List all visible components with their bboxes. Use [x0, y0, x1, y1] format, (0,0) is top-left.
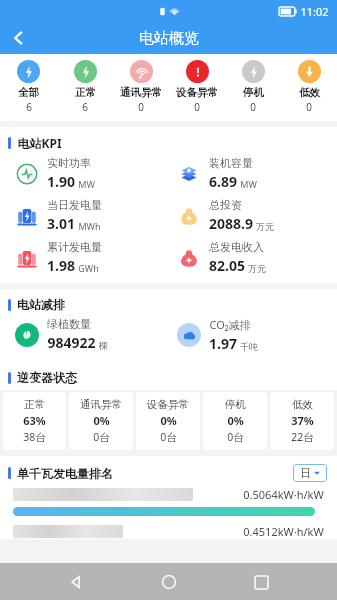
staticText: 0% — [93, 413, 110, 428]
staticText: 通讯异常 — [80, 398, 122, 411]
button[interactable]: 通讯异常 — [113, 60, 169, 114]
staticText: 总投资 — [209, 198, 242, 212]
staticText: 82.05 — [209, 256, 245, 275]
staticText: 2088.9 — [209, 214, 253, 233]
button[interactable]: Home — [152, 565, 186, 599]
staticText: 1.97 — [209, 334, 237, 353]
button[interactable]: 正常 — [57, 60, 113, 114]
staticText: 设备异常 — [147, 398, 189, 411]
staticText: 正常 — [75, 86, 96, 99]
staticText: 低效 — [299, 86, 320, 99]
staticText: MW — [240, 178, 257, 190]
staticText: 低效 — [292, 398, 313, 411]
staticText: 电站概览 — [139, 29, 199, 48]
button[interactable]: 低效 — [281, 60, 337, 114]
staticText: 0.5064kW·h/kW — [243, 487, 324, 502]
staticText: 千吨 — [240, 341, 258, 352]
staticText: 总发电收入 — [209, 240, 264, 254]
button[interactable]: 累计发电量 — [14, 240, 102, 275]
button[interactable]: 设备异常 — [136, 392, 200, 450]
staticText: 正常 — [24, 398, 45, 411]
staticText: 63% — [23, 413, 46, 428]
button[interactable]: 总发电收入 — [176, 240, 266, 275]
staticText: 984922 — [47, 333, 96, 352]
staticText: 累计发电量 — [47, 240, 102, 254]
button[interactable]: 绿植数量 — [14, 317, 108, 352]
staticText: 11:02 — [300, 4, 329, 19]
staticText: 绿植数量 — [47, 317, 91, 331]
staticText: 37% — [291, 413, 314, 428]
button[interactable]: Recents — [244, 565, 278, 599]
staticText: 0% — [160, 413, 177, 428]
button[interactable]: 日 — [293, 464, 327, 482]
button[interactable]: Back — [59, 565, 93, 599]
button[interactable]: 低效 — [270, 392, 334, 450]
button[interactable]: 0.4512kW·h/kW — [0, 524, 337, 539]
staticText: 万元 — [248, 263, 266, 274]
staticText: 电站KPI — [17, 135, 62, 151]
staticText: 3.01 — [47, 214, 75, 233]
button[interactable]: CO₂减排 — [176, 317, 258, 353]
staticText: 装机容量 — [209, 156, 253, 170]
staticText: 22台 — [291, 430, 314, 444]
staticText: GWh — [78, 262, 99, 274]
staticText: 日 — [300, 466, 311, 480]
staticText: 0 — [138, 100, 144, 114]
staticText: 全部 — [18, 86, 39, 99]
staticText: 设备异常 — [176, 86, 218, 99]
staticText: 38台 — [23, 430, 46, 444]
staticText: 停机 — [225, 398, 246, 411]
staticText: 万元 — [256, 221, 274, 232]
staticText: MW — [78, 178, 95, 190]
button[interactable]: 当日发电量 — [14, 198, 102, 233]
button[interactable]: Back — [4, 23, 34, 53]
button[interactable]: 停机 — [225, 60, 281, 114]
staticText: 1.90 — [47, 172, 75, 191]
button[interactable]: 通讯异常 — [69, 392, 133, 450]
button[interactable]: 正常 — [3, 392, 66, 450]
button[interactable]: 全部 — [0, 60, 57, 114]
staticText: 通讯异常 — [120, 86, 162, 99]
staticText: 实时功率 — [47, 156, 91, 170]
staticText: 逆变器状态 — [17, 370, 77, 385]
staticText: 停机 — [243, 86, 264, 99]
staticText: 6.89 — [209, 172, 237, 191]
staticText: 0台 — [93, 430, 110, 444]
staticText: 0 — [194, 100, 200, 114]
staticText: 单千瓦发电量排名 — [17, 466, 113, 481]
staticText: 6 — [26, 100, 32, 114]
button[interactable]: 装机容量 — [176, 156, 257, 191]
staticText: 0% — [227, 413, 244, 428]
staticText: 1.98 — [47, 256, 75, 275]
button[interactable]: 停机 — [203, 392, 267, 450]
staticText: CO₂减排 — [209, 317, 251, 332]
staticText: 电站减排 — [17, 297, 65, 312]
staticText: 6 — [82, 100, 88, 114]
staticText: MWh — [78, 220, 101, 232]
staticText: 0 — [306, 100, 312, 114]
staticText: 当日发电量 — [47, 198, 102, 212]
button[interactable]: 实时功率 — [14, 156, 95, 191]
button[interactable]: 0.5064kW·h/kW — [0, 487, 337, 516]
staticText: 0台 — [160, 430, 177, 444]
button[interactable]: 总投资 — [176, 198, 274, 233]
staticText: 0 — [250, 100, 256, 114]
button[interactable]: 设备异常 — [169, 60, 225, 114]
staticText: 0台 — [227, 430, 244, 444]
staticText: 0.4512kW·h/kW — [243, 524, 324, 539]
staticText: 棵 — [99, 340, 108, 351]
